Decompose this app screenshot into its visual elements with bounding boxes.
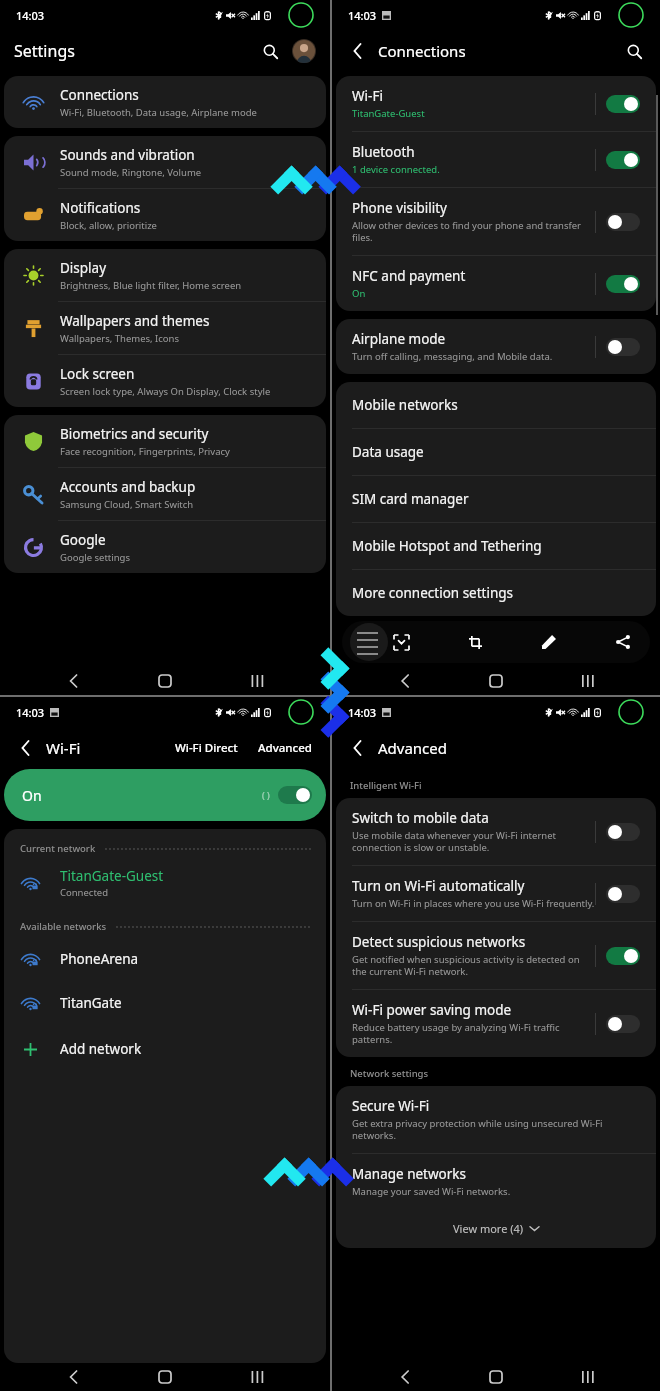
button[interactable]: Wallpapers and themes [4, 302, 326, 354]
staticText: Connections [378, 41, 620, 61]
staticText: Airplane mode [352, 330, 446, 348]
button[interactable]: Wi-Fi power saving mode [336, 990, 656, 1057]
button[interactable]: SIM card manager [336, 476, 656, 522]
staticText: Manage your saved Wi-Fi networks. [352, 1185, 511, 1198]
staticText: Advanced [378, 738, 648, 758]
staticText: Manage networks [352, 1165, 467, 1183]
button[interactable]: Biometrics and security [4, 415, 326, 467]
staticText: Connected [60, 886, 109, 899]
button[interactable]: Data usage [336, 429, 656, 475]
staticText: PhoneArena [60, 950, 139, 968]
staticText: Turn off calling, messaging, and Mobile … [352, 350, 553, 363]
button[interactable]: Profile [292, 39, 316, 63]
staticText: ( ) [262, 789, 270, 801]
button[interactable]: Notifications [4, 189, 326, 241]
staticText: 1 device connected. [352, 163, 440, 176]
staticText: On [22, 786, 42, 805]
button[interactable]: Scroll capture [388, 629, 414, 655]
button[interactable]: Phone visibility [336, 188, 656, 255]
staticText: Bluetooth [352, 143, 415, 161]
button[interactable]: More connection settings [336, 570, 656, 616]
button[interactable]: Switch to mobile data [336, 798, 656, 865]
staticText: Intelligent Wi-Fi [350, 779, 422, 792]
button[interactable]: Mobile Hotspot and Tethering [336, 523, 656, 569]
button[interactable]: Add network [4, 1025, 326, 1073]
staticText: Mobile networks [352, 396, 458, 414]
button[interactable]: Off [606, 213, 640, 231]
button[interactable]: Secure Wi-Fi [336, 1086, 656, 1153]
staticText: Google [60, 531, 106, 549]
staticText: Use mobile data whenever your Wi-Fi inte… [352, 829, 595, 854]
staticText: TitanGate-Guest [60, 867, 164, 885]
button[interactable]: Share [610, 629, 636, 655]
staticText: Mobile Hotspot and Tethering [352, 537, 542, 555]
staticText: 14:03 [348, 705, 377, 720]
button[interactable]: Mobile networks [336, 382, 656, 428]
staticText: Turn on Wi-Fi automatically [352, 877, 525, 895]
staticText: Allow other devices to find your phone a… [352, 219, 595, 244]
button[interactable]: Accounts and backup [4, 468, 326, 520]
staticText: Secure Wi-Fi [352, 1097, 430, 1115]
button[interactable]: On [606, 947, 640, 965]
button[interactable]: Google [4, 521, 326, 573]
button[interactable]: Advanced [252, 734, 318, 762]
staticText: Google settings [60, 551, 131, 564]
staticText: Switch to mobile data [352, 809, 489, 827]
button[interactable]: Back [12, 734, 40, 762]
button[interactable]: On [606, 95, 640, 113]
button[interactable]: Off [606, 338, 640, 356]
button[interactable]: Crop [462, 629, 488, 655]
staticText: NFC and payment [352, 267, 466, 285]
button[interactable]: TitanGate-Guest [4, 859, 326, 907]
button[interactable]: Draw [536, 629, 562, 655]
staticText: Screen lock type, Always On Display, Clo… [60, 385, 271, 398]
button[interactable]: View more (4) [336, 1209, 656, 1248]
button[interactable]: Detect suspicious networks [336, 922, 656, 989]
button[interactable]: NFC and payment [336, 256, 656, 311]
button[interactable]: Off [606, 823, 640, 841]
button[interactable]: Lock screen [4, 355, 326, 407]
button[interactable]: Off [606, 1015, 640, 1033]
staticText: Connections [60, 86, 139, 104]
button[interactable]: PhoneArena [4, 937, 326, 981]
button[interactable]: Airplane mode [336, 319, 656, 374]
staticText: Lock screen [60, 365, 135, 383]
staticText: View more (4) [453, 1221, 524, 1236]
staticText: Accounts and backup [60, 478, 196, 496]
button[interactable]: Bluetooth [336, 132, 656, 187]
staticText: Sound mode, Ringtone, Volume [60, 166, 202, 179]
staticText: 14:03 [16, 705, 45, 720]
staticText: Turn on Wi-Fi in places where you use Wi… [352, 897, 595, 910]
button[interactable]: Off [606, 885, 640, 903]
button[interactable]: On [606, 151, 640, 169]
staticText: More connection settings [352, 584, 514, 602]
staticText: Data usage [352, 443, 424, 461]
button[interactable]: Search [620, 37, 648, 65]
button[interactable]: On [606, 275, 640, 293]
button[interactable]: Wi-Fi [336, 76, 656, 131]
staticText: Phone visibility [352, 199, 447, 217]
button[interactable]: Turn on Wi-Fi automatically [336, 866, 656, 921]
staticText: Sounds and vibration [60, 146, 195, 164]
button[interactable]: Back [344, 734, 372, 762]
staticText: Available networks [20, 920, 107, 933]
button[interactable]: On [4, 769, 326, 821]
button[interactable]: Back [344, 37, 372, 65]
staticText: Current network [20, 842, 96, 855]
button[interactable]: Wi-Fi Direct [169, 734, 244, 762]
staticText: TitanGate [60, 994, 122, 1012]
staticText: Display [60, 259, 107, 277]
button[interactable]: Sounds and vibration [4, 136, 326, 188]
staticText: Wallpapers and themes [60, 312, 210, 330]
button[interactable]: TitanGate [4, 981, 326, 1025]
staticText: Wi-Fi [352, 87, 383, 105]
staticText: On [352, 287, 366, 300]
staticText: Block, allow, prioritize [60, 219, 157, 232]
button[interactable]: Manage networks [336, 1154, 656, 1209]
staticText: 14:03 [348, 8, 377, 23]
button[interactable]: Connections [4, 76, 326, 128]
button[interactable]: Search [256, 37, 284, 65]
staticText: Network settings [350, 1067, 429, 1080]
button[interactable]: Display [4, 249, 326, 301]
button[interactable]: Preview [350, 623, 388, 661]
